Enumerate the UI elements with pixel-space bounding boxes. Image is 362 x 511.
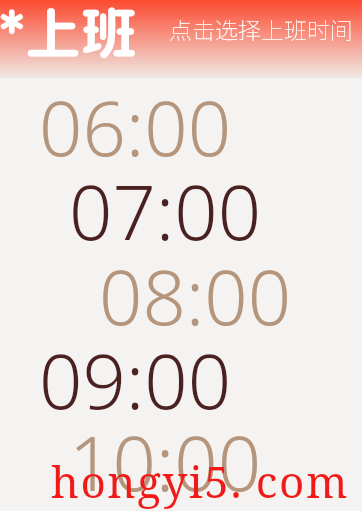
button[interactable]: 09:00 (39, 328, 234, 412)
staticText: 09:00 (39, 328, 232, 412)
staticText: 07:00 (69, 159, 262, 243)
button[interactable]: 06:00 (39, 75, 234, 159)
button[interactable]: 07:00 (69, 159, 264, 243)
staticText: 上班 (25, 0, 137, 71)
other: App logo (0, 8, 28, 36)
staticText: 点击选择上班时间 (169, 12, 353, 45)
staticText: 08:00 (99, 244, 292, 328)
staticText: 06:00 (39, 75, 232, 159)
button[interactable]: 10:00 (69, 410, 264, 494)
staticText: 10:00 (69, 410, 262, 494)
staticText: hongyi5. com (51, 451, 349, 511)
button[interactable]: 08:00 (99, 244, 294, 328)
